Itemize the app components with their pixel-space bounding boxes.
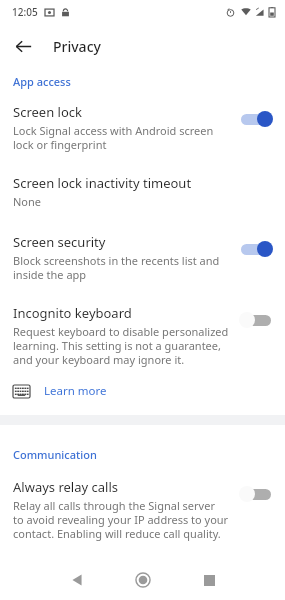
button[interactable]: Learn more <box>0 381 119 401</box>
staticText: Block screenshots in the recents list an… <box>13 253 220 282</box>
button[interactable]: Incognito keyboard <box>0 302 285 369</box>
staticText: 12:05 <box>12 5 38 19</box>
button[interactable]: Home <box>121 560 165 600</box>
button[interactable]: On <box>239 239 273 259</box>
staticText: None <box>13 194 42 209</box>
button[interactable]: Back <box>55 560 99 600</box>
staticText: Privacy <box>53 37 101 56</box>
staticText: App access <box>13 74 71 89</box>
button[interactable]: Screen lock <box>0 101 285 154</box>
staticText: Screen lock inactivity timeout <box>13 174 192 192</box>
button[interactable]: Recents <box>187 560 231 600</box>
button[interactable]: On <box>239 109 273 129</box>
staticText: Learn more <box>44 383 107 399</box>
button[interactable]: Screen security <box>0 231 285 284</box>
button[interactable]: Screen lock inactivity timeout <box>0 172 285 211</box>
staticText: Lock Signal access with Android screen l… <box>13 123 214 152</box>
button[interactable]: Off <box>239 310 273 330</box>
button[interactable]: Always relay calls <box>0 476 285 543</box>
staticText: Screen security <box>13 233 106 251</box>
button[interactable]: Off <box>239 484 273 504</box>
staticText: Screen lock <box>13 103 82 121</box>
staticText: Always relay calls <box>13 478 118 496</box>
staticText: Incognito keyboard <box>13 304 132 322</box>
staticText: Relay all calls through the Signal serve… <box>13 498 229 541</box>
button[interactable]: Back <box>6 29 40 63</box>
staticText: Request keyboard to disable personalized… <box>13 324 229 367</box>
staticText: Communication <box>13 447 97 462</box>
